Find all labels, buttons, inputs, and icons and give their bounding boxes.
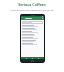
button[interactable] [22, 31, 43, 33]
staticText: Serious Coffees [0, 2, 64, 7]
staticText: Looks into what an offline-first app can… [0, 9, 64, 12]
button[interactable] [22, 37, 43, 39]
button[interactable] [22, 40, 43, 42]
button[interactable] [22, 28, 43, 30]
button[interactable] [22, 21, 43, 24]
button[interactable]: Home [31, 60, 34, 63]
button[interactable] [22, 25, 43, 27]
button[interactable] [22, 43, 43, 45]
button[interactable]: Tab 0 [21, 57, 44, 59]
button[interactable] [22, 34, 43, 36]
button[interactable]: Menu [21, 17, 44, 20]
button[interactable]: Menu [20, 14, 45, 63]
